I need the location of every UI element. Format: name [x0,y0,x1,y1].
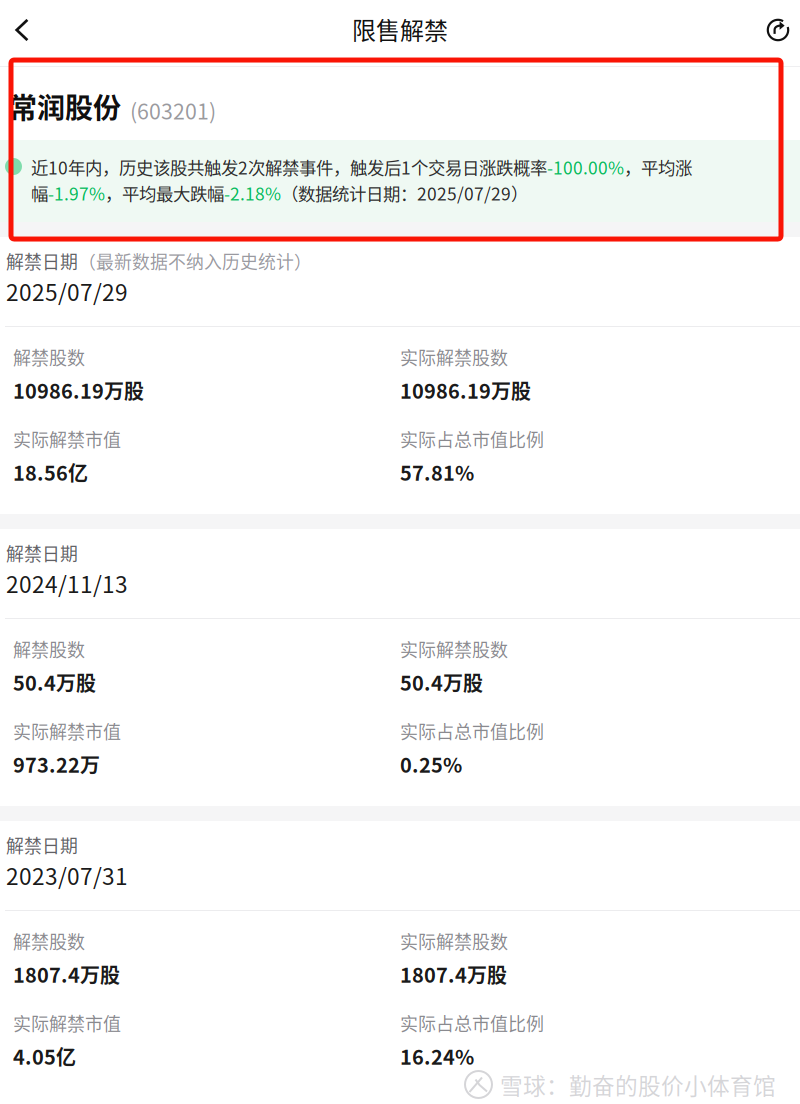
staticText: 57.81% [400,457,474,486]
staticText: -1.97% [48,180,105,206]
staticText: -2.18% [224,180,281,206]
staticText: 雪球：勤奋的股价小体育馆 [500,1068,776,1101]
staticText: 实际解禁股数 [400,928,508,954]
staticText: 1807.4万股 [400,959,507,988]
staticText: 实际占总市值比例 [400,1010,544,1036]
staticText: 50.4万股 [400,667,483,696]
staticText: 973.22万 [13,749,100,778]
staticText: 0.25% [400,749,462,778]
staticText: 4.05亿 [13,1041,76,1070]
staticText: 实际占总市值比例 [400,426,544,452]
button[interactable]: Back [0,9,44,51]
staticText: ，平均涨 [624,154,692,180]
staticText: 实际占总市值比例 [400,718,544,744]
staticText: 2024/11/13 [6,567,128,599]
staticText: 限售解禁 [352,12,448,46]
staticText: 解禁日期 [6,248,78,274]
staticText: 实际解禁股数 [400,636,508,662]
staticText: -100.00% [547,154,624,180]
staticText: 解禁股数 [13,636,85,662]
staticText: 近10年内，历史该股共触发2次解禁事件，触发后1个交易日涨跌概率 [31,154,547,180]
staticText: 解禁股数 [13,928,85,954]
staticText: 1807.4万股 [13,959,120,988]
staticText: 实际解禁市值 [13,718,121,744]
staticText: 50.4万股 [13,667,96,696]
staticText: 解禁股数 [13,344,85,370]
staticText: 解禁日期 [6,832,78,858]
staticText: 实际解禁股数 [400,344,508,370]
staticText: 解禁日期 [6,540,78,566]
staticText: 幅 [31,180,48,206]
staticText: （最新数据不纳入历史统计） [78,248,312,274]
staticText: 实际解禁市值 [13,1010,121,1036]
staticText: 实际解禁市值 [13,426,121,452]
staticText: 16.24% [400,1041,474,1070]
staticText: ，平均最大跌幅 [105,180,224,206]
staticText: (603201) [130,95,216,126]
button[interactable]: Refresh [756,9,800,51]
staticText: 2025/07/29 [6,275,128,307]
staticText: （数据统计日期：2025/07/29） [281,180,528,206]
staticText: 10986.19万股 [13,375,144,404]
staticText: 2023/07/31 [6,859,128,891]
staticText: 10986.19万股 [400,375,531,404]
staticText: 18.56亿 [13,457,88,486]
staticText: 常润股份 [9,86,121,126]
